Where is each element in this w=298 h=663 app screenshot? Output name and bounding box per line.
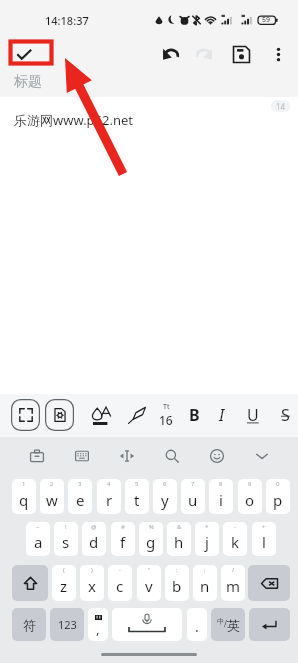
- button[interactable]: 符: [12, 608, 46, 641]
- button[interactable]: Shift: [12, 565, 48, 601]
- staticText: c: [116, 576, 124, 596]
- button[interactable]: Redo: [191, 40, 219, 68]
- button[interactable]: (: [52, 565, 76, 601]
- button[interactable]: 123: [50, 608, 84, 641]
- button[interactable]: U: [240, 402, 266, 428]
- staticText: 中: [217, 617, 224, 626]
- staticText: Tt: [163, 402, 170, 412]
- staticText: I: [219, 404, 225, 426]
- staticText: B: [189, 404, 200, 426]
- button[interactable]: /: [221, 565, 245, 601]
- staticText: 14: [276, 101, 286, 112]
- button[interactable]: Highlight: [124, 402, 150, 428]
- button[interactable]: ;: [193, 565, 217, 601]
- staticText: U: [247, 404, 259, 426]
- staticText: 4: [107, 480, 111, 488]
- button[interactable]: Emoji: [203, 442, 231, 470]
- button[interactable]: Undo: [155, 40, 183, 68]
- staticText: d: [89, 532, 99, 552]
- staticText: 59: [262, 15, 271, 25]
- button[interactable]: More options: [264, 40, 292, 68]
- button[interactable]: @: [82, 522, 106, 556]
- staticText: n: [200, 576, 210, 596]
- button[interactable]: *: [195, 522, 219, 556]
- button[interactable]: Backspace: [248, 565, 290, 601]
- staticText: -: [234, 523, 236, 531]
- staticText: 6: [163, 480, 167, 488]
- button[interactable]: 6: [153, 479, 177, 514]
- button[interactable]: ): [80, 565, 104, 601]
- button[interactable]: 4: [97, 479, 121, 514]
- staticText: -: [119, 566, 121, 574]
- staticText: :: [176, 566, 178, 574]
- staticText: 符: [23, 617, 36, 633]
- button[interactable]: 0: [266, 479, 290, 514]
- button[interactable]: Done: [10, 40, 38, 68]
- button[interactable]: Move cursor: [113, 442, 141, 470]
- staticText: 乐游网www.p62.net: [14, 111, 134, 129]
- button[interactable]: #: [111, 522, 135, 556]
- button[interactable]: S: [272, 402, 298, 428]
- button[interactable]: Enter: [249, 608, 290, 641]
- staticText: 英: [227, 617, 240, 633]
- button[interactable]: 9: [238, 479, 262, 514]
- staticText: m: [226, 576, 241, 596]
- button[interactable]: ~: [26, 522, 50, 556]
- staticText: 标题: [14, 73, 42, 91]
- button[interactable]: !: [54, 522, 78, 556]
- button[interactable]: %: [139, 522, 163, 556]
- staticText: s: [62, 532, 70, 552]
- staticText: h: [174, 532, 184, 552]
- staticText: ): [91, 566, 93, 574]
- staticText: g: [146, 532, 156, 552]
- button[interactable]: Save: [227, 40, 255, 68]
- button[interactable]: -: [223, 522, 247, 556]
- staticText: %: [149, 523, 154, 531]
- button[interactable]: Keyboard layout: [68, 442, 96, 470]
- button[interactable]: I: [209, 402, 235, 428]
- button[interactable]: B: [181, 402, 207, 428]
- button[interactable]: -: [108, 565, 132, 601]
- button[interactable]: 中: [211, 608, 245, 641]
- staticText: w: [46, 490, 58, 510]
- staticText: q: [19, 490, 29, 510]
- button[interactable]: 3: [68, 479, 92, 514]
- button[interactable]: Template: [45, 399, 74, 431]
- staticText: ,: [96, 620, 100, 638]
- staticText: i: [219, 490, 223, 510]
- staticText: f: [120, 532, 126, 552]
- staticText: z: [60, 576, 68, 596]
- staticText: x: [88, 576, 96, 596]
- button[interactable]: :: [165, 565, 189, 601]
- button[interactable]: 2: [40, 479, 64, 514]
- staticText: y: [161, 490, 169, 510]
- button[interactable]: 8: [209, 479, 233, 514]
- button[interactable]: Clipboard: [23, 442, 51, 470]
- button[interactable]: 7: [181, 479, 205, 514]
- button[interactable]: &: [167, 522, 191, 556]
- staticText: o: [245, 490, 255, 510]
- button[interactable]: Period: [187, 608, 207, 641]
- button[interactable]: Search: [158, 442, 186, 470]
- button[interactable]: 1: [12, 479, 36, 514]
- button[interactable]: Hide keyboard: [248, 442, 276, 470]
- staticText: ;: [204, 566, 206, 574]
- staticText: @: [91, 523, 97, 531]
- staticText: #: [121, 523, 125, 531]
- button[interactable]: Symbols: [88, 608, 108, 641]
- staticText: k: [231, 532, 240, 552]
- button[interactable]: Space: [112, 608, 182, 641]
- button[interactable]: Text colour: [89, 402, 115, 428]
- staticText: !: [65, 523, 67, 531]
- staticText: *: [205, 523, 209, 531]
- staticText: e: [76, 490, 85, 510]
- staticText: u: [188, 490, 198, 510]
- button[interactable]: +: [252, 522, 276, 556]
- button[interactable]: ": [137, 565, 161, 601]
- staticText: 5: [135, 480, 139, 488]
- button[interactable]: Font size: [153, 402, 179, 428]
- button[interactable]: 5: [125, 479, 149, 514]
- staticText: 3: [78, 480, 82, 488]
- staticText: 9: [248, 480, 252, 488]
- button[interactable]: Fullscreen: [11, 399, 40, 431]
